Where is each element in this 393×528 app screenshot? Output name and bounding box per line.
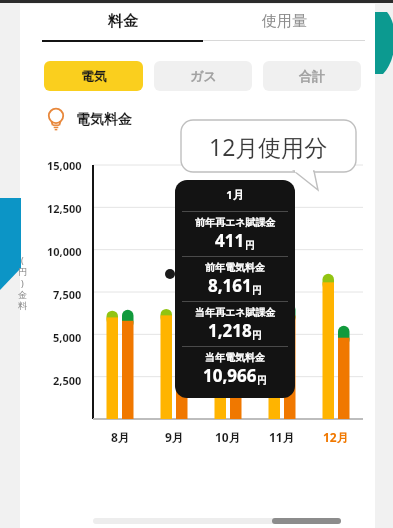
staticText: 9月	[165, 429, 184, 445]
button[interactable]: ガス	[154, 61, 252, 91]
other: Electricity	[46, 107, 66, 133]
button[interactable]: 料金	[42, 12, 203, 42]
staticText: 料金	[108, 12, 138, 31]
staticText: 前年再エネ賦課金	[195, 216, 276, 229]
staticText: 金	[18, 289, 27, 300]
staticText: 8,161	[208, 274, 252, 297]
staticText: 15,000	[47, 158, 82, 173]
staticText: 11月	[269, 429, 295, 445]
staticText: 円	[252, 284, 262, 297]
button[interactable]: 合計	[263, 61, 361, 91]
staticText: (	[21, 254, 24, 266]
staticText: 円	[257, 374, 267, 387]
staticText: 円	[245, 239, 255, 252]
staticText: 10,000	[47, 244, 82, 259]
staticText: 合計	[299, 68, 325, 84]
staticText: 2,500	[53, 373, 82, 388]
staticText: 411	[215, 229, 245, 252]
staticText: 1月	[226, 187, 244, 202]
staticText: 10,966	[203, 364, 257, 387]
staticText: 10月	[215, 429, 241, 445]
staticText: 12月	[323, 429, 349, 445]
staticText: 前年電気料金	[205, 261, 265, 274]
staticText: 12月使用分	[209, 131, 328, 162]
staticText: 円	[252, 329, 262, 342]
staticText: 電気	[81, 68, 107, 84]
staticText: 1,218	[208, 319, 252, 342]
staticText: 料	[18, 300, 27, 311]
button[interactable]: 12月使用分	[181, 120, 356, 172]
button[interactable]: 使用量	[203, 12, 365, 41]
staticText: 使用量	[262, 12, 307, 31]
staticText: ガス	[190, 68, 217, 84]
staticText: 当年再エネ賦課金	[195, 306, 276, 319]
button[interactable]: 電気	[44, 61, 143, 91]
staticText: 7,500	[53, 287, 82, 302]
staticText: 円	[18, 266, 27, 277]
staticText: 当年電気料金	[205, 351, 265, 364]
staticText: )	[21, 277, 24, 289]
button[interactable]: 1月	[175, 180, 295, 398]
staticText: 8月	[111, 429, 130, 445]
staticText: 5,000	[53, 330, 82, 345]
staticText: 電気料金	[76, 111, 132, 129]
staticText: 12,500	[47, 201, 82, 216]
